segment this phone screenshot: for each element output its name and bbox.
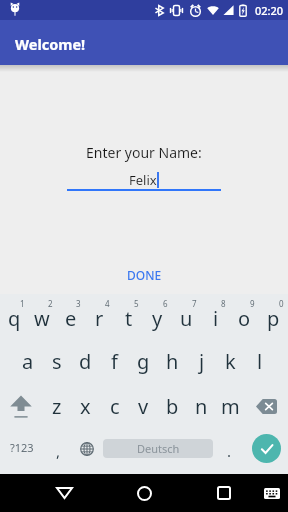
staticText: u bbox=[180, 305, 193, 332]
button[interactable]: Home bbox=[104, 474, 184, 512]
staticText: 7 bbox=[192, 298, 197, 309]
button[interactable]: s bbox=[42, 339, 71, 384]
button[interactable]: h bbox=[158, 339, 187, 384]
staticText: h bbox=[166, 348, 179, 375]
staticText: x bbox=[80, 393, 91, 420]
button[interactable]: 6 bbox=[143, 294, 172, 339]
button[interactable]: 8 bbox=[201, 294, 230, 339]
button[interactable]: f bbox=[100, 339, 129, 384]
button[interactable]: Back bbox=[24, 474, 104, 512]
button[interactable]: k bbox=[216, 339, 245, 384]
staticText: w bbox=[34, 305, 50, 332]
staticText: 3 bbox=[76, 298, 81, 309]
staticText: s bbox=[52, 348, 62, 375]
staticText: 6 bbox=[163, 298, 168, 309]
button[interactable]: g bbox=[129, 339, 158, 384]
staticText: v bbox=[138, 393, 149, 420]
staticText: b bbox=[166, 393, 179, 420]
staticText: l bbox=[257, 348, 263, 375]
staticText: c bbox=[110, 393, 120, 420]
button[interactable]: b bbox=[158, 384, 187, 429]
button[interactable]: c bbox=[100, 384, 129, 429]
staticText: d bbox=[79, 348, 92, 375]
staticText: . bbox=[227, 441, 232, 461]
button[interactable]: 3 bbox=[56, 294, 85, 339]
button[interactable]: x bbox=[71, 384, 100, 429]
staticText: 02:20 bbox=[255, 3, 284, 18]
staticText: a bbox=[22, 348, 34, 375]
staticText: y bbox=[152, 305, 163, 332]
staticText: Felix bbox=[129, 171, 157, 189]
staticText: Deutsch bbox=[137, 441, 180, 456]
button[interactable]: l bbox=[245, 339, 274, 384]
button[interactable]: n bbox=[187, 384, 216, 429]
staticText: , bbox=[56, 441, 61, 461]
button[interactable]: Recent apps bbox=[184, 474, 264, 512]
button[interactable]: 7 bbox=[172, 294, 201, 339]
staticText: 9 bbox=[250, 298, 255, 309]
staticText: o bbox=[238, 305, 251, 332]
staticText: Enter your Name: bbox=[86, 143, 202, 162]
button[interactable]: a bbox=[13, 339, 42, 384]
button[interactable]: DONE bbox=[117, 263, 172, 287]
staticText: f bbox=[111, 348, 118, 375]
button[interactable]: 5 bbox=[114, 294, 143, 339]
button[interactable]: 1 bbox=[0, 294, 28, 339]
staticText: 0 bbox=[279, 298, 284, 309]
staticText: ?123 bbox=[10, 440, 34, 455]
button[interactable]: 4 bbox=[85, 294, 114, 339]
button[interactable]: Deutsch bbox=[103, 439, 213, 458]
staticText: g bbox=[137, 348, 150, 375]
button[interactable]: j bbox=[187, 339, 216, 384]
button[interactable]: Enter bbox=[252, 434, 281, 463]
staticText: i bbox=[213, 305, 219, 332]
button[interactable]: m bbox=[216, 384, 245, 429]
button[interactable]: v bbox=[129, 384, 158, 429]
button[interactable]: Change keyboard language bbox=[72, 429, 102, 474]
staticText: Welcome! bbox=[15, 34, 86, 54]
button[interactable]: 9 bbox=[230, 294, 259, 339]
staticText: q bbox=[8, 305, 21, 332]
button[interactable]: d bbox=[71, 339, 100, 384]
staticText: t bbox=[125, 305, 133, 332]
staticText: e bbox=[65, 305, 77, 332]
staticText: r bbox=[95, 305, 104, 332]
staticText: k bbox=[225, 348, 236, 375]
button[interactable]: ?123 bbox=[0, 429, 44, 474]
button[interactable]: . bbox=[214, 429, 244, 474]
staticText: DONE bbox=[127, 267, 162, 283]
button[interactable]: , bbox=[44, 429, 72, 474]
staticText: 5 bbox=[134, 298, 139, 309]
button[interactable]: Switch keyboard bbox=[256, 474, 288, 512]
button[interactable]: 2 bbox=[28, 294, 56, 339]
staticText: n bbox=[195, 393, 208, 420]
button[interactable]: Shift bbox=[0, 384, 42, 429]
button[interactable]: z bbox=[42, 384, 71, 429]
staticText: 8 bbox=[221, 298, 226, 309]
staticText: 1 bbox=[20, 298, 25, 309]
staticText: z bbox=[52, 393, 62, 420]
staticText: 4 bbox=[105, 298, 110, 309]
button[interactable]: Backspace bbox=[245, 384, 288, 429]
staticText: m bbox=[221, 393, 240, 420]
staticText: j bbox=[199, 348, 205, 375]
button[interactable]: 0 bbox=[259, 294, 288, 339]
staticText: 2 bbox=[48, 298, 53, 309]
staticText: p bbox=[267, 305, 280, 332]
